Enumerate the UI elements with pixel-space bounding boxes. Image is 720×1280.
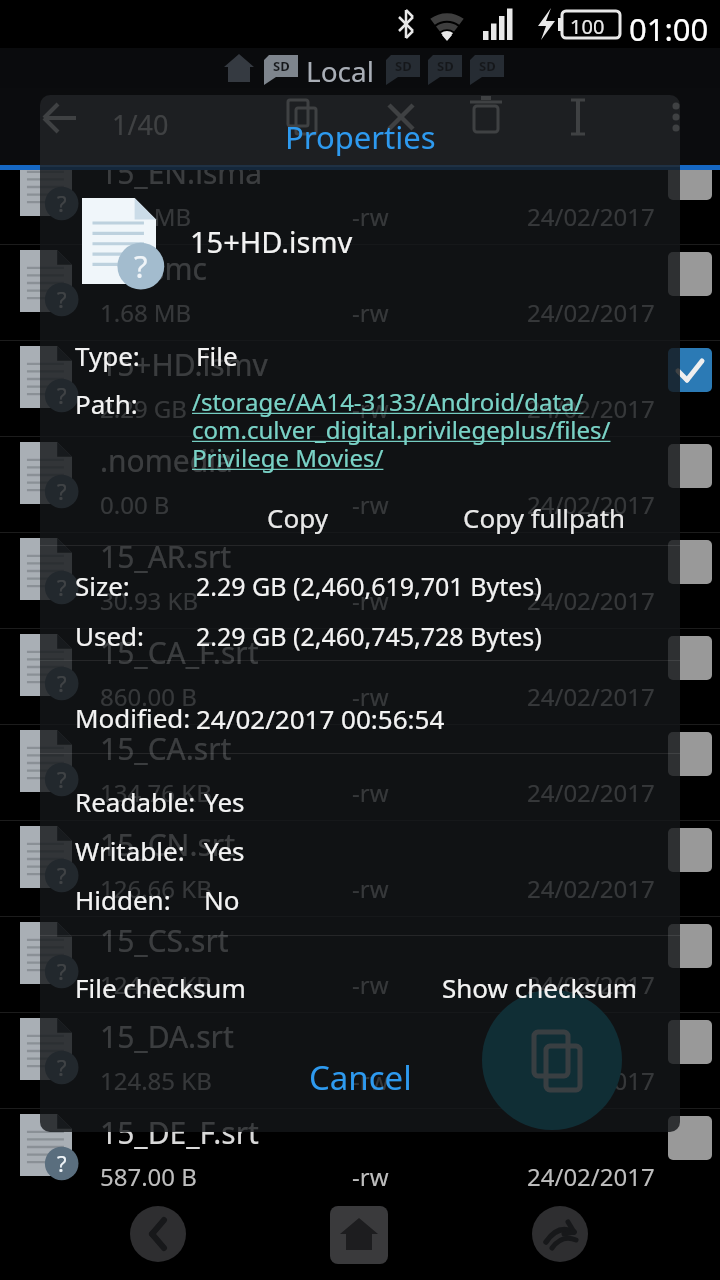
staticText: ? [57,764,67,794]
staticText: ? [57,956,67,986]
button[interactable]: Show checksum [420,970,638,1005]
staticText: -rw [352,968,389,1001]
staticText: 15+HD.ismv [190,222,353,261]
staticText: 15+HD.ismv [100,344,268,385]
button[interactable]: Copy [97,500,497,535]
staticText: Readable: [75,784,196,819]
staticText: 124.07 KB [100,968,212,1001]
button[interactable] [0,436,720,532]
staticText: 24/02/2017 [527,1160,655,1193]
staticText: ? [134,245,148,287]
staticText: Writable: [75,833,185,868]
button[interactable] [668,732,712,776]
button[interactable] [668,1116,712,1160]
button[interactable] [668,1020,712,1064]
button[interactable] [668,828,712,872]
staticText: ? [57,668,67,698]
staticText: -rw [352,584,389,617]
staticText: ? [57,1148,67,1178]
button[interactable] [216,48,262,88]
staticText: No [204,882,240,917]
staticText: Size: [75,568,130,603]
staticText: -rw [352,776,389,809]
staticText: 587.00 B [100,1160,197,1193]
button[interactable]: File checksum [75,970,246,1005]
button[interactable] [130,1206,186,1262]
button[interactable]: Privilege Movies/ [192,441,384,474]
button[interactable]: Local [306,52,374,90]
staticText: ? [57,572,67,602]
staticText: 2.29 GB [100,392,187,425]
staticText: -rw [352,680,389,713]
button[interactable] [0,820,720,916]
button[interactable] [0,244,720,340]
staticText: -rw [352,1160,389,1193]
staticText: SD [395,57,412,75]
button[interactable] [0,1012,720,1108]
staticText: Type: [75,338,140,373]
staticText: Hidden: [75,882,171,917]
button[interactable]: Cancel [160,1055,560,1100]
staticText: .nomedia [100,440,233,481]
button[interactable] [330,1206,388,1264]
staticText: Copy fullpath [463,500,626,535]
button[interactable] [0,148,720,244]
button[interactable] [668,348,712,392]
button[interactable]: com.culver_digital.privilegeplus/files/ [192,413,611,446]
staticText: 24/02/2017 [527,488,655,521]
staticText: 2.29 GB (2,460,745,728 Bytes) [196,619,542,653]
button[interactable] [668,444,712,488]
button[interactable] [668,540,712,584]
staticText: 30.93 KB [100,584,199,617]
staticText: 15_EN.isma [100,152,263,193]
staticText: Show checksum [442,970,638,1005]
staticText: 15_CA.srt [100,728,232,769]
staticText: 01:00 [629,8,709,50]
staticText: 2.29 GB (2,460,619,701 Bytes) [196,569,542,603]
staticText: SD [273,57,290,75]
staticText: 24/02/2017 [527,392,655,425]
staticText: Yes [204,833,245,868]
button[interactable] [0,1108,720,1204]
button[interactable] [668,636,712,680]
staticText: Modified: [75,700,191,735]
staticText: 24/02/2017 [527,1064,655,1097]
button[interactable] [668,252,712,296]
button[interactable]: Copy fullpath [344,500,720,535]
button[interactable] [0,340,720,436]
button[interactable] [482,990,622,1130]
staticText: Used: [75,618,145,653]
staticText: 24/02/2017 [527,968,655,1001]
staticText: ? [57,380,67,410]
staticText: 24/02/2017 [527,872,655,905]
staticText: 860.00 B [100,680,197,713]
staticText: 24/02/2017 [527,776,655,809]
button[interactable] [668,156,712,200]
button[interactable] [668,924,712,968]
staticText: ? [57,476,67,506]
button[interactable] [532,1206,588,1262]
staticText: Yes [204,784,245,819]
button[interactable] [0,628,720,724]
button[interactable] [0,532,720,628]
staticText: SD [479,57,496,75]
staticText: -rw [352,488,389,521]
staticText: ? [57,1052,67,1082]
button[interactable] [0,724,720,820]
staticText: -rw [352,392,389,425]
staticText: Copy [267,500,328,535]
staticText: -rw [352,872,389,905]
staticText: File [196,338,238,373]
staticText: ? [57,860,67,890]
staticText: 15_CS.srt [100,920,229,961]
staticText: 0.00 B [100,488,170,521]
staticText: 15_CN.srt [100,824,236,865]
button[interactable]: /storage/AA14-3133/Android/data/ [192,385,584,418]
button[interactable] [0,916,720,1012]
staticText: 1.63 MB [100,200,192,233]
staticText: 1.68 MB [100,296,192,329]
staticText: 126.66 KB [100,872,212,905]
staticText: 1/40 [112,106,169,143]
staticText: 100 [570,13,605,40]
staticText: 24/02/2017 [527,296,655,329]
